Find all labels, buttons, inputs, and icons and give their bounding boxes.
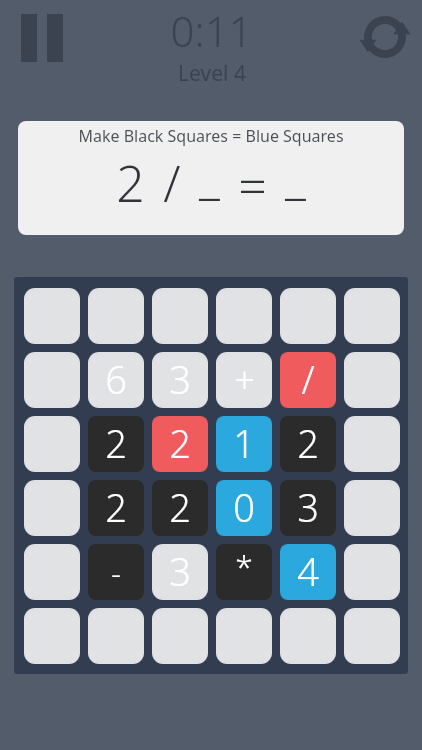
button[interactable]: Make Black Squares = Blue Squares — [18, 121, 404, 235]
staticText: 0:11 — [170, 2, 253, 59]
staticText: 0 — [233, 481, 255, 533]
button[interactable]: * — [216, 544, 272, 600]
button[interactable] — [24, 544, 80, 600]
staticText: / — [163, 149, 181, 217]
button[interactable]: 6 — [88, 352, 144, 408]
staticText: 3 — [297, 481, 319, 533]
staticText: - — [111, 552, 121, 593]
button[interactable] — [280, 288, 336, 344]
button[interactable]: 4 — [280, 544, 336, 600]
button[interactable] — [24, 416, 80, 472]
button[interactable] — [152, 608, 208, 664]
staticText: Make Black Squares = Blue Squares — [18, 125, 404, 147]
button[interactable] — [344, 416, 400, 472]
staticText: Level 4 — [178, 59, 246, 88]
button[interactable] — [344, 544, 400, 600]
staticText: * — [235, 544, 253, 588]
button[interactable]: 3 — [280, 480, 336, 536]
button[interactable] — [152, 288, 208, 344]
button[interactable]: 3 — [152, 352, 208, 408]
staticText: 2 — [297, 417, 319, 469]
button[interactable] — [344, 288, 400, 344]
button[interactable]: 3 — [152, 544, 208, 600]
staticText: 2 — [116, 149, 145, 217]
staticText: 3 — [169, 545, 191, 597]
button[interactable] — [24, 608, 80, 664]
button[interactable] — [24, 480, 80, 536]
button[interactable]: 2 — [152, 480, 208, 536]
staticText: 1 — [233, 417, 255, 469]
button[interactable]: 2 — [88, 480, 144, 536]
button[interactable]: / — [280, 352, 336, 408]
staticText: 3 — [169, 353, 191, 405]
button[interactable] — [280, 608, 336, 664]
button[interactable]: + — [216, 352, 272, 408]
button[interactable] — [344, 352, 400, 408]
staticText: _ — [285, 141, 306, 209]
button[interactable]: 2 — [280, 416, 336, 472]
staticText: / — [301, 353, 315, 405]
staticText: 4 — [297, 545, 319, 597]
button[interactable] — [88, 608, 144, 664]
button[interactable]: 2 — [152, 416, 208, 472]
button[interactable]: - — [88, 544, 144, 600]
button[interactable]: Restart — [358, 10, 412, 64]
button[interactable] — [24, 352, 80, 408]
staticText: 2 — [169, 481, 191, 533]
staticText: _ — [199, 141, 220, 209]
button[interactable] — [88, 288, 144, 344]
button[interactable]: Pause — [14, 8, 70, 68]
button[interactable] — [24, 288, 80, 344]
staticText: 2 — [105, 417, 127, 469]
button[interactable]: 1 — [216, 416, 272, 472]
staticText: = — [238, 151, 267, 219]
staticText: + — [234, 355, 255, 404]
button[interactable] — [344, 480, 400, 536]
staticText: 2 — [169, 417, 191, 469]
button[interactable] — [216, 608, 272, 664]
button[interactable] — [344, 608, 400, 664]
staticText: 2 — [105, 481, 127, 533]
staticText: 6 — [105, 353, 127, 405]
button[interactable]: 0 — [216, 480, 272, 536]
button[interactable] — [216, 288, 272, 344]
button[interactable]: 2 — [88, 416, 144, 472]
